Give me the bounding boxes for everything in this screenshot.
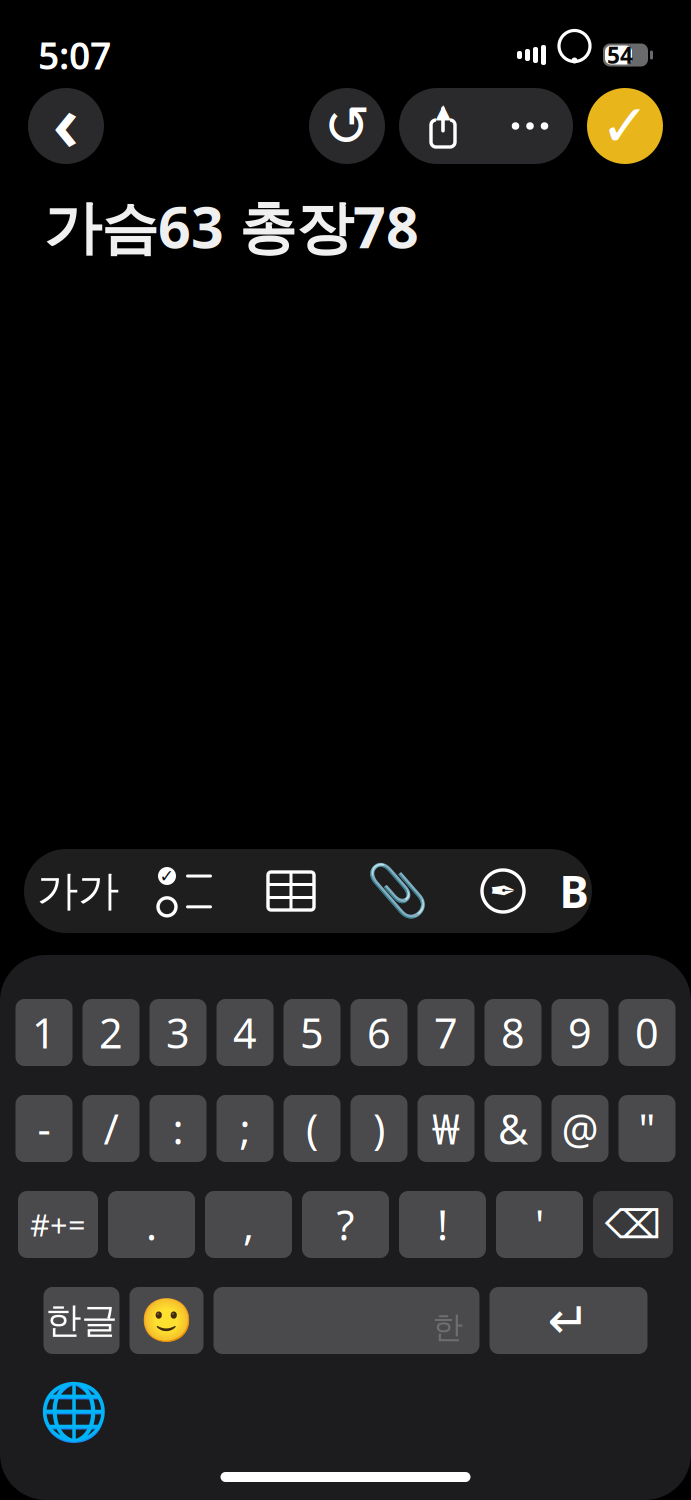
button[interactable]: Table — [238, 849, 344, 933]
staticText: ‹ — [52, 70, 79, 172]
staticText: 54 — [607, 40, 633, 70]
button[interactable]: Emoji — [129, 1287, 203, 1354]
staticText: ⌫ — [604, 1202, 661, 1247]
button[interactable]: More — [487, 88, 573, 164]
staticText: 가슴63 총장78 — [44, 188, 419, 264]
button[interactable]: ) — [350, 1095, 407, 1162]
button[interactable]: Markup — [450, 849, 556, 933]
staticText: - — [37, 1101, 50, 1156]
button[interactable]: @ — [551, 1095, 608, 1162]
button[interactable]: , — [205, 1191, 292, 1258]
button[interactable]: : — [149, 1095, 206, 1162]
staticText: ↵ — [547, 1292, 589, 1349]
button[interactable]: ( — [283, 1095, 340, 1162]
staticText: & — [498, 1101, 528, 1156]
button[interactable]: 0 — [618, 999, 675, 1066]
button[interactable]: Delete — [593, 1191, 673, 1258]
staticText: 🌐 — [39, 1380, 109, 1444]
button[interactable]: Text format — [24, 849, 132, 933]
staticText: ! — [437, 1197, 448, 1252]
staticText: ) — [373, 1101, 385, 1156]
button[interactable]: 8 — [484, 999, 541, 1066]
button[interactable]: 6 — [350, 999, 407, 1066]
staticText: 8 — [501, 1005, 525, 1060]
button[interactable]: Bold — [556, 849, 592, 933]
staticText: 6 — [367, 1005, 391, 1060]
button[interactable]: & — [484, 1095, 541, 1162]
staticText: 9 — [568, 1005, 592, 1060]
button[interactable]: ; — [216, 1095, 273, 1162]
staticText: 5:07 — [38, 30, 111, 80]
button[interactable]: ! — [399, 1191, 486, 1258]
button[interactable]: #+= — [18, 1191, 98, 1258]
button[interactable]: Done — [587, 88, 663, 164]
staticText: @ — [561, 1101, 598, 1156]
button[interactable]: Undo — [309, 88, 385, 164]
staticText: B — [559, 862, 588, 920]
button[interactable]: 5 — [283, 999, 340, 1066]
button[interactable]: Attach file — [344, 849, 450, 933]
staticText: ↺ — [323, 94, 370, 158]
button[interactable]: 7 — [417, 999, 474, 1066]
button[interactable]: Return — [489, 1287, 647, 1354]
button[interactable]: Space — [213, 1287, 479, 1354]
staticText: ; — [239, 1101, 250, 1156]
staticText: 🙂 — [140, 1296, 193, 1345]
staticText: ✒ — [489, 873, 516, 909]
staticText: ( — [306, 1101, 318, 1156]
staticText: #+= — [30, 1204, 86, 1245]
button[interactable]: Change keyboard — [42, 1380, 106, 1444]
button[interactable]: 1 — [15, 999, 72, 1066]
button[interactable]: ? — [302, 1191, 389, 1258]
staticText: 1 — [32, 1005, 56, 1060]
staticText: 2 — [99, 1005, 123, 1060]
button[interactable]: 3 — [149, 999, 206, 1066]
button[interactable]: Share — [399, 88, 487, 164]
staticText: 한 — [432, 1308, 463, 1346]
button[interactable]: 4 — [216, 999, 273, 1066]
staticText: 5 — [300, 1005, 324, 1060]
button[interactable]: . — [108, 1191, 195, 1258]
staticText: ▲ — [435, 100, 450, 122]
staticText: 가가 — [37, 866, 119, 916]
staticText: 0 — [635, 1005, 659, 1060]
button[interactable]: 2 — [82, 999, 139, 1066]
button[interactable]: Checklist — [132, 849, 238, 933]
button[interactable]: " — [618, 1095, 675, 1162]
staticText: : — [172, 1101, 183, 1156]
staticText: 📎 — [365, 862, 428, 920]
button[interactable]: 9 — [551, 999, 608, 1066]
staticText: ' — [535, 1197, 544, 1252]
staticText: " — [638, 1101, 655, 1156]
staticText: 한글 — [45, 1298, 117, 1343]
button[interactable]: / — [82, 1095, 139, 1162]
staticText: . — [146, 1197, 157, 1252]
staticText: ? — [336, 1197, 354, 1252]
button[interactable]: ₩ — [417, 1095, 474, 1162]
button[interactable]: - — [15, 1095, 72, 1162]
button[interactable]: ' — [496, 1191, 583, 1258]
staticText: ₩ — [432, 1101, 460, 1156]
staticText: 4 — [233, 1005, 257, 1060]
staticText: ✓ — [159, 866, 174, 886]
staticText: / — [103, 1101, 118, 1156]
staticText: , — [243, 1197, 254, 1252]
button[interactable]: Back — [28, 88, 104, 164]
button[interactable]: 한글 — [43, 1287, 119, 1354]
staticText: ✓ — [600, 93, 649, 159]
staticText: 7 — [434, 1005, 458, 1060]
staticText: 3 — [166, 1005, 190, 1060]
